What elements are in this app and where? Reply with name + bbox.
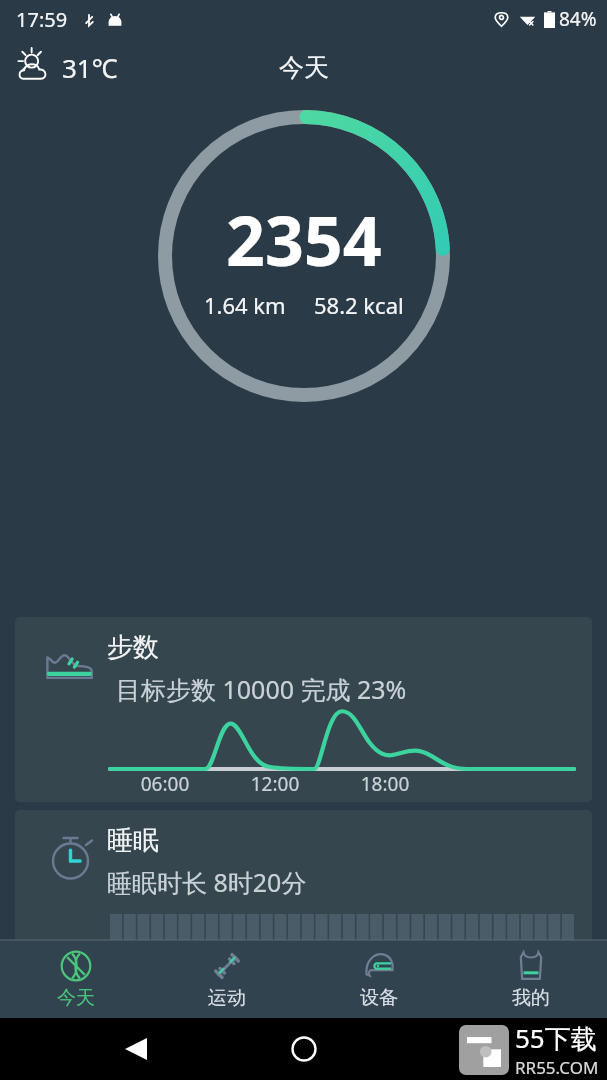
staticText: 步数 xyxy=(107,631,159,664)
button[interactable]: 步数 xyxy=(15,617,592,802)
staticText: 目标步数 10000 完成 23% xyxy=(116,672,407,706)
staticText: 今天 xyxy=(57,986,95,1010)
button[interactable]: 睡眠 xyxy=(15,810,592,940)
staticText: 今天 xyxy=(279,52,329,83)
staticText: 1.64 km xyxy=(204,290,286,320)
staticText: RR55.COM xyxy=(515,1056,599,1079)
button[interactable]: 运动 xyxy=(151,940,303,1018)
staticText: 设备 xyxy=(360,986,398,1010)
button[interactable]: 今天 xyxy=(0,940,151,1018)
staticText: 06:00 xyxy=(110,771,220,797)
button[interactable]: 设备 xyxy=(303,940,455,1018)
staticText: 睡眠 xyxy=(107,824,159,857)
staticText: 17:59 xyxy=(16,6,68,33)
staticText: 2354 xyxy=(226,193,382,286)
staticText: 84% xyxy=(559,6,597,32)
button[interactable]: 我的 xyxy=(455,940,607,1018)
staticText: 12:00 xyxy=(220,771,330,797)
staticText: 我的 xyxy=(512,986,550,1010)
staticText: 18:00 xyxy=(330,771,440,797)
staticText: 31℃ xyxy=(62,50,118,85)
staticText: 55下载 xyxy=(515,1020,597,1056)
staticText: 运动 xyxy=(208,986,246,1010)
staticText: 睡眠时长 8时20分 xyxy=(107,865,307,899)
staticText: 58.2 kcal xyxy=(314,290,404,320)
